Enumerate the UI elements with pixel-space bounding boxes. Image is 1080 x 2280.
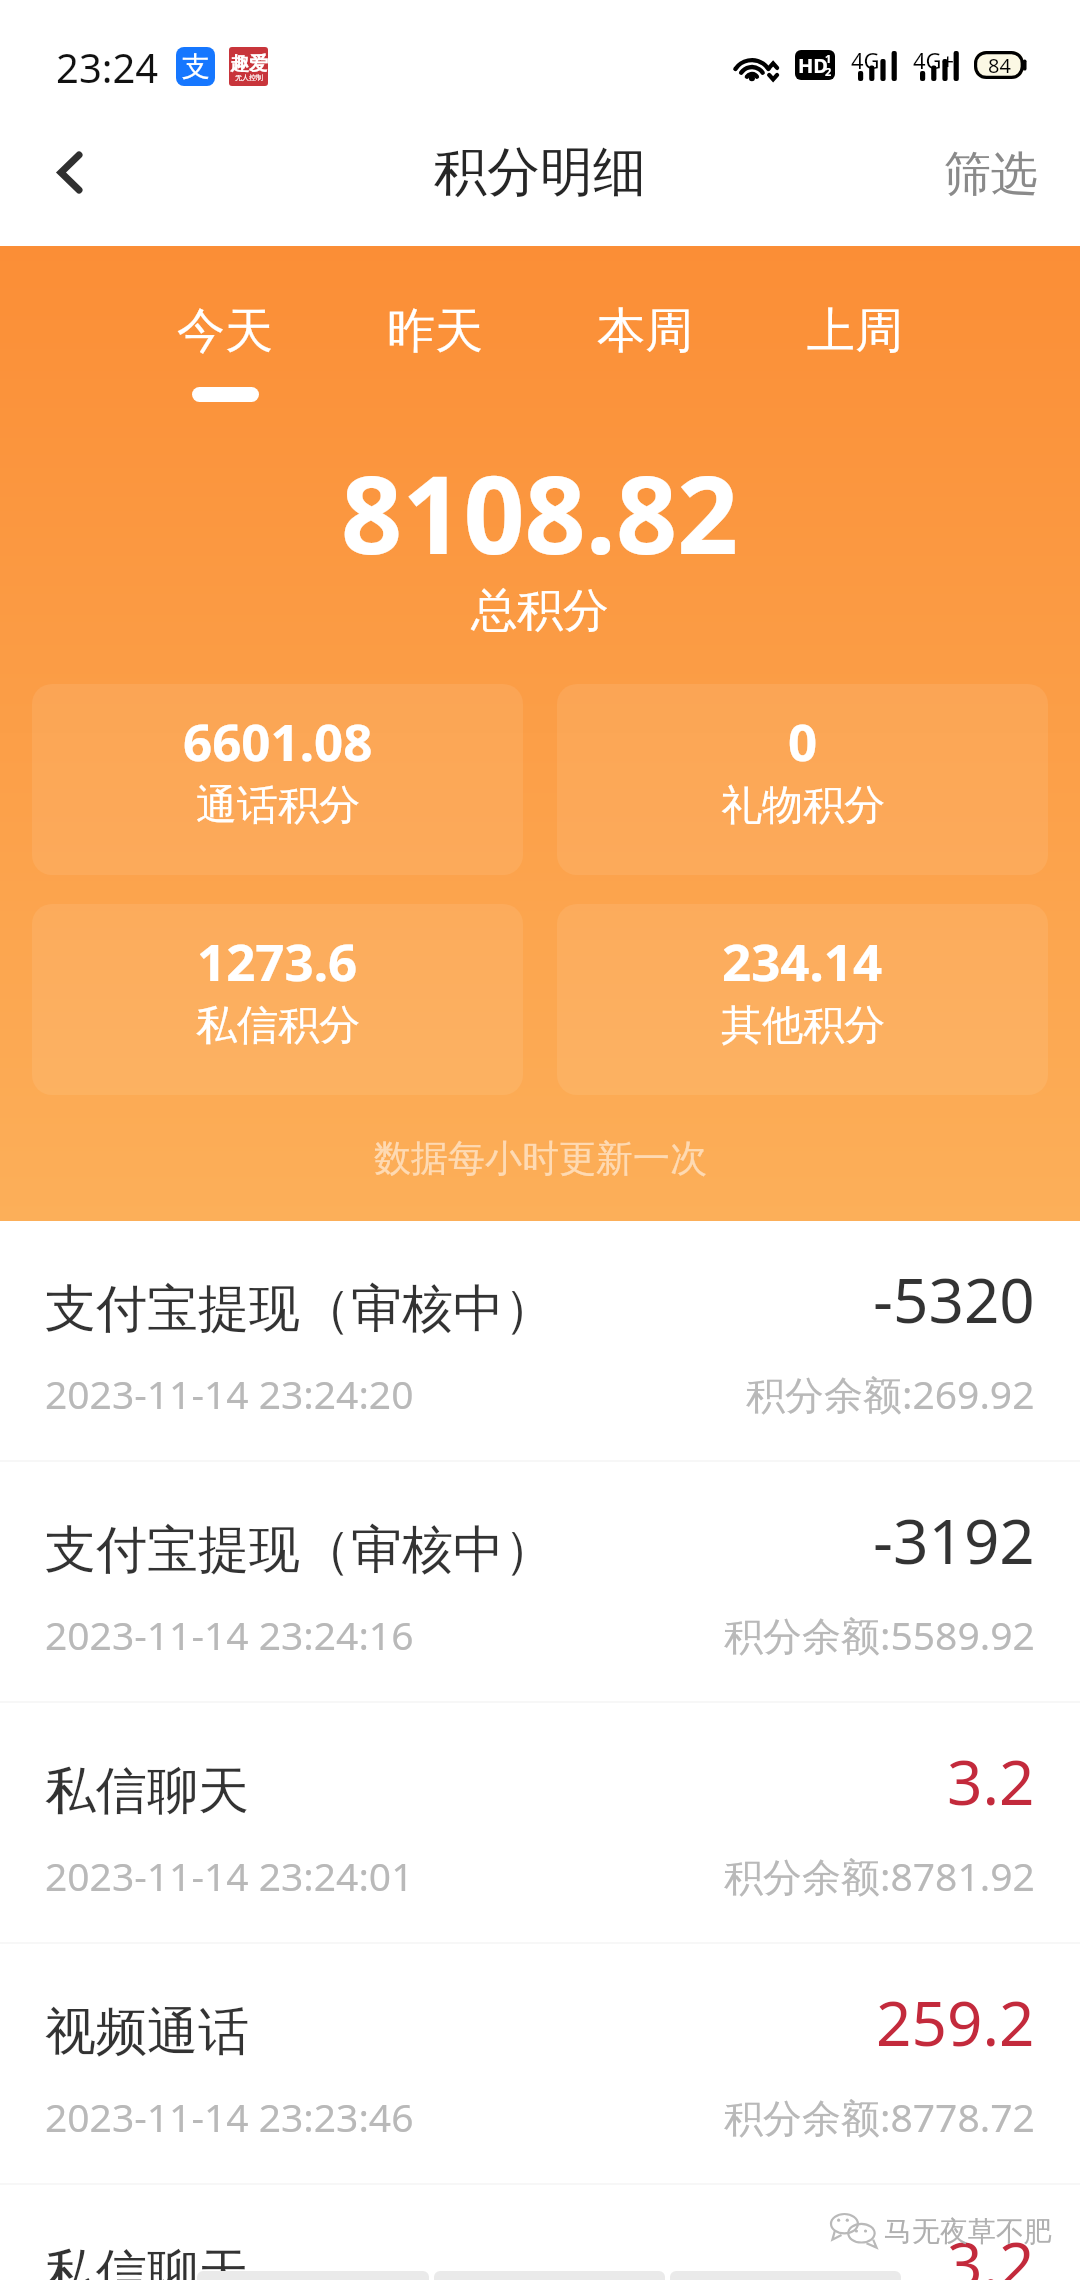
button[interactable]: Back	[26, 128, 114, 216]
staticText: 本周	[597, 301, 693, 361]
staticText: 4G	[851, 45, 880, 75]
staticText: 积分余额:8778.72	[724, 2090, 1035, 2143]
button[interactable]: 支付宝提现（审核中）	[0, 1462, 1080, 1703]
staticText: 84	[988, 52, 1011, 79]
staticText: 通话积分	[196, 780, 360, 832]
staticText: 3.2	[947, 1739, 1035, 1823]
staticText: 积分余额:8781.92	[724, 1849, 1035, 1902]
button[interactable]: 昨天	[330, 246, 540, 416]
staticText: 其他积分	[721, 1000, 885, 1052]
staticText: 1273.6	[197, 926, 358, 995]
staticText: 无人控制	[235, 73, 263, 82]
staticText: 2	[825, 64, 832, 79]
staticText: 2023-11-14 23:24:20	[45, 1367, 414, 1420]
staticText: 234.14	[722, 926, 883, 995]
staticText: 2023-11-14 23:24:01	[45, 1849, 414, 1902]
button[interactable]: 支付宝提现（审核中）	[0, 1221, 1080, 1462]
button[interactable]: 6601.08	[32, 684, 523, 875]
staticText: -5320	[873, 1257, 1035, 1341]
button[interactable]: 今天	[120, 246, 330, 416]
button[interactable]: 视频通话	[0, 1944, 1080, 2185]
staticText: 3.2	[947, 2221, 1035, 2280]
button[interactable]: 0	[557, 684, 1048, 875]
staticText: 23:24	[56, 40, 159, 94]
button[interactable]: 私信聊天	[0, 1703, 1080, 1944]
staticText: 支付宝提现（审核中）	[45, 1277, 555, 1341]
staticText: 2023-11-14 23:23:46	[45, 2090, 414, 2143]
staticText: 259.2	[876, 1980, 1035, 2064]
staticText: 筛选	[944, 145, 1038, 204]
staticText: 8108.82	[341, 440, 739, 586]
staticText: 今天	[177, 301, 273, 361]
staticText: 2023-11-14 23:24:16	[45, 1608, 414, 1661]
button[interactable]: 私信聊天	[0, 2185, 1080, 2280]
staticText: -3192	[873, 1498, 1035, 1582]
staticText: 礼物积分	[721, 780, 885, 832]
staticText: 4G+	[913, 45, 955, 75]
staticText: 积分明细	[434, 139, 646, 206]
button[interactable]: 234.14	[557, 904, 1048, 1095]
staticText: 数据每小时更新一次	[374, 1135, 707, 1182]
staticText: HD	[798, 52, 828, 79]
button[interactable]: 1273.6	[32, 904, 523, 1095]
staticText: 私信积分	[196, 1000, 360, 1052]
staticText: 上周	[807, 301, 903, 361]
staticText: 总积分	[471, 582, 609, 640]
button[interactable]: 本周	[540, 246, 750, 416]
staticText: 积分余额:5589.92	[724, 1608, 1035, 1661]
staticText: 私信聊天	[45, 1759, 249, 1823]
staticText: 昨天	[387, 301, 483, 361]
staticText: 0	[788, 706, 818, 775]
staticText: 马无夜草不肥	[884, 2214, 1052, 2249]
staticText: 趣爱	[230, 52, 268, 76]
staticText: 支付宝提现（审核中）	[45, 1518, 555, 1582]
staticText: 6601.08	[183, 706, 373, 775]
staticText: 1	[825, 51, 832, 66]
staticText: 积分余额:269.92	[746, 1367, 1035, 1420]
staticText: 支	[182, 49, 210, 84]
button[interactable]: 筛选	[936, 137, 1046, 212]
staticText: 视频通话	[45, 2000, 249, 2064]
staticText: 私信聊天	[45, 2241, 249, 2280]
button[interactable]: 上周	[750, 246, 960, 416]
